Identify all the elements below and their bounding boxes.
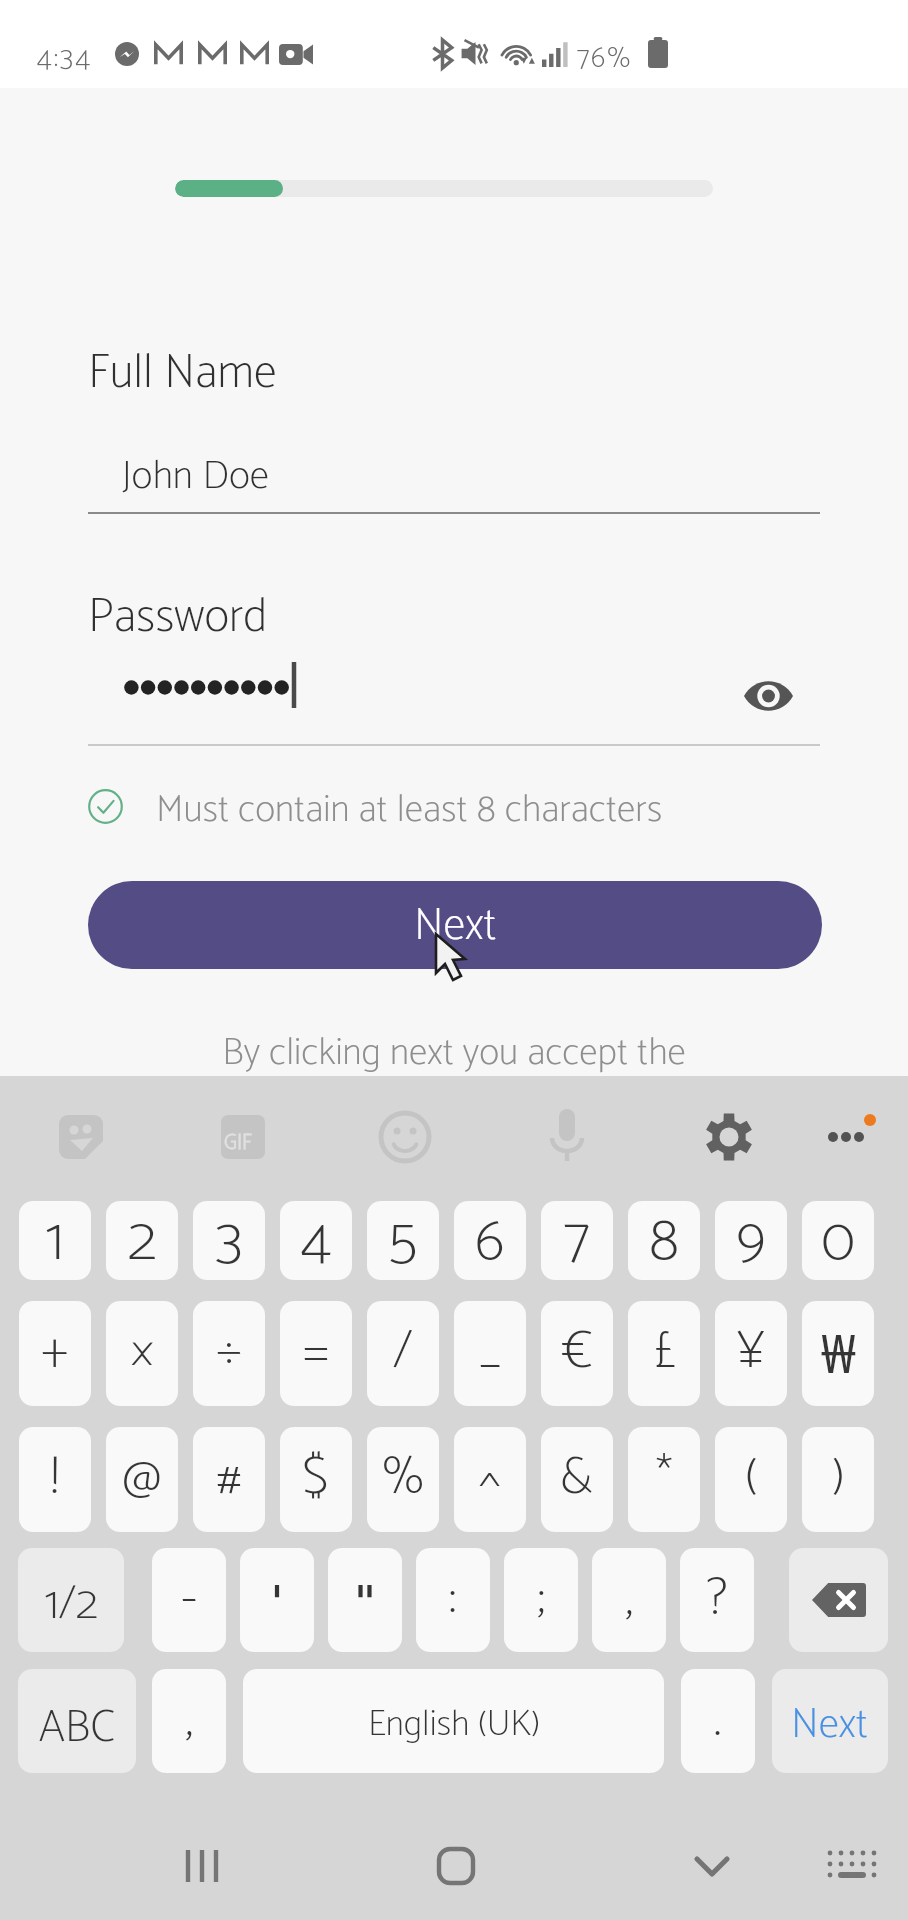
button[interactable]: Settings [606, 1076, 757, 1200]
button[interactable]: ABC [18, 1669, 136, 1773]
staticText: 7 [564, 1201, 590, 1272]
staticText: 76% [577, 35, 632, 83]
staticText: # [216, 1436, 242, 1521]
staticText: ÷ [216, 1310, 242, 1395]
staticText: = [303, 1310, 329, 1395]
button[interactable]: ¥ [715, 1301, 787, 1406]
button[interactable]: * [628, 1427, 700, 1532]
staticText: 8 [649, 1201, 680, 1272]
button[interactable]: Recents [0, 1790, 227, 1920]
button[interactable]: Hide keyboard [454, 1790, 681, 1920]
button[interactable]: 0 [802, 1201, 874, 1280]
staticText: 0 [821, 1201, 856, 1272]
staticText: 6 [475, 1201, 505, 1272]
button[interactable]: % [367, 1427, 439, 1532]
other: Backspace [812, 1583, 866, 1617]
staticText: By clicking next you accept the Terms of… [0, 1022, 908, 1128]
button[interactable]: - [152, 1548, 226, 1652]
button[interactable]: English (UK) [243, 1669, 664, 1773]
button[interactable]: Voice input [455, 1076, 606, 1200]
staticText: Next [791, 1691, 869, 1760]
button[interactable]: : [416, 1548, 490, 1652]
staticText: John Doe [122, 444, 269, 510]
staticText: - [181, 1557, 198, 1642]
button[interactable]: 2 [106, 1201, 178, 1280]
button[interactable]: GIF [152, 1076, 304, 1200]
button[interactable]: . [681, 1669, 755, 1773]
button[interactable]: , [592, 1548, 666, 1652]
staticText: Password [88, 579, 268, 656]
staticText: € [562, 1310, 593, 1395]
staticText: @ [122, 1436, 162, 1521]
button[interactable]: # [193, 1427, 265, 1532]
button[interactable]: ? [680, 1548, 754, 1652]
button[interactable]: ₩ [802, 1301, 874, 1406]
button[interactable]: Next [772, 1669, 888, 1773]
staticText: ! [51, 1436, 59, 1521]
button[interactable]: 8 [628, 1201, 700, 1280]
button[interactable]: ( [715, 1427, 787, 1532]
staticText: ^ [479, 1436, 501, 1521]
staticText: Must contain at least 8 characters [156, 779, 663, 841]
staticText: × [130, 1310, 155, 1395]
button[interactable]: 5 [367, 1201, 439, 1280]
staticText: & [560, 1436, 594, 1521]
button[interactable]: × [106, 1301, 178, 1406]
button[interactable]: _ [454, 1301, 526, 1406]
button[interactable]: 7 [541, 1201, 613, 1280]
staticText: ? [707, 1557, 728, 1642]
staticText: Next [414, 889, 497, 963]
staticText: ¥ [737, 1310, 765, 1395]
staticText: ₩ [821, 1317, 856, 1388]
staticText: Full Name [88, 335, 277, 412]
button[interactable]: Stickers [0, 1076, 152, 1200]
button[interactable]: More [757, 1076, 908, 1200]
button[interactable]: Switch keyboard [681, 1790, 908, 1920]
button[interactable]: ) [802, 1427, 874, 1532]
staticText: , [185, 1678, 193, 1763]
staticText: ( [745, 1436, 758, 1521]
button[interactable]: 4 [280, 1201, 352, 1280]
button[interactable]: @ [106, 1427, 178, 1532]
button[interactable]: Backspace [789, 1548, 888, 1652]
staticText: ; [537, 1557, 545, 1642]
button[interactable]: £ [628, 1301, 700, 1406]
staticText: ) [832, 1436, 845, 1521]
staticText: 9 [736, 1201, 766, 1272]
button[interactable]: 1 [19, 1201, 91, 1280]
button[interactable]: $ [280, 1427, 352, 1532]
staticText: . [714, 1678, 722, 1763]
staticText: ABC [39, 1691, 116, 1765]
button[interactable]: ; [504, 1548, 578, 1652]
button[interactable]: + [19, 1301, 91, 1406]
button[interactable]: / [367, 1301, 439, 1406]
button[interactable] [240, 1548, 314, 1652]
button[interactable]: , [152, 1669, 226, 1773]
staticText: 4 [301, 1201, 332, 1272]
staticText: _ [479, 1310, 502, 1395]
button[interactable]: Next [88, 881, 822, 969]
button[interactable]: & [541, 1427, 613, 1532]
button[interactable]: € [541, 1301, 613, 1406]
button[interactable]: 3 [193, 1201, 265, 1280]
button[interactable]: = [280, 1301, 352, 1406]
button[interactable]: ^ [454, 1427, 526, 1532]
button[interactable]: Emoji [304, 1076, 455, 1200]
button[interactable]: Home [227, 1790, 454, 1920]
button[interactable]: 6 [454, 1201, 526, 1280]
staticText: 5 [388, 1201, 418, 1272]
button[interactable]: ÷ [193, 1301, 265, 1406]
staticText: : [449, 1557, 457, 1642]
staticText: % [382, 1436, 425, 1521]
button[interactable]: 1/2 [18, 1548, 124, 1652]
staticText: / [393, 1310, 413, 1395]
staticText: $ [302, 1436, 330, 1521]
button[interactable] [328, 1548, 402, 1652]
staticText: * [656, 1436, 673, 1521]
button[interactable]: ! [19, 1427, 91, 1532]
button[interactable]: Show password [720, 650, 816, 742]
button[interactable]: 9 [715, 1201, 787, 1280]
staticText: 2 [128, 1201, 157, 1272]
staticText: 3 [216, 1201, 243, 1272]
staticText: 1/2 [45, 1567, 98, 1642]
